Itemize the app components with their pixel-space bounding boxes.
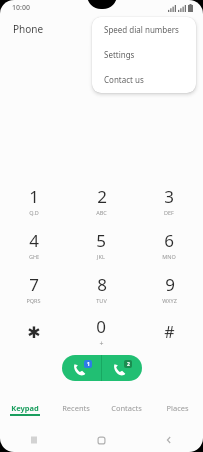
button[interactable]: Recent apps [0,428,67,452]
staticText: JKL [97,253,105,260]
button[interactable]: 7 [0,266,67,310]
staticText: TUV [96,297,107,304]
button[interactable]: 3 [135,178,203,222]
staticText: 8 [97,273,107,296]
staticText: ABC [96,209,107,216]
button[interactable]: Recents [50,403,101,421]
staticText: Keypad [11,403,39,413]
button[interactable]: Settings [92,42,196,67]
staticText: PQRS [26,297,41,304]
staticText: 7 [29,273,39,296]
button[interactable]: Speed dial numbers [92,17,196,42]
button[interactable]: Keypad [0,403,50,421]
staticText: 9 [165,273,175,296]
button[interactable]: ✱ [0,310,67,354]
staticText: 0 [96,315,106,338]
staticText: 3 [164,185,174,208]
staticText: 5 [96,229,106,252]
staticText: DEF [164,209,174,216]
staticText: Q.D [29,209,39,216]
button[interactable]: Contact us [92,67,196,92]
staticText: Phone [13,22,44,36]
staticText: 2 [127,361,130,368]
button[interactable]: 2 [67,178,135,222]
button[interactable]: Call with SIM 2 [102,355,142,381]
staticText: ✱ [27,323,41,342]
button[interactable]: 0 [67,310,135,354]
button[interactable]: 8 [67,266,135,310]
staticText: 1 [87,361,90,368]
staticText: Places [166,403,189,413]
button[interactable]: 4 [0,222,67,266]
button[interactable]: 6 [135,222,203,266]
staticText: Settings [104,49,135,60]
button[interactable]: 5 [67,222,135,266]
button[interactable]: 1 [0,178,67,222]
button[interactable]: Call with SIM 1 [62,355,101,381]
staticText: Contacts [111,403,142,413]
staticText: GHI [29,253,39,260]
button[interactable]: # [135,310,203,354]
staticText: WXYZ [162,297,177,304]
staticText: Recents [62,403,90,413]
staticText: 1 [29,185,39,208]
staticText: 4 [29,229,39,252]
button[interactable]: Places [152,403,203,421]
staticText: Contact us [104,74,144,85]
button[interactable]: Back [135,428,203,452]
staticText: # [164,321,175,343]
staticText: Speed dial numbers [104,24,179,35]
staticText: 10:00 [12,3,30,13]
staticText: MNO [162,253,176,260]
button[interactable]: Contacts [101,403,152,421]
button[interactable]: 9 [135,266,203,310]
button[interactable]: Home [67,428,135,452]
staticText: 2 [97,185,107,208]
staticText: 6 [164,229,174,252]
staticText: + [99,339,104,349]
